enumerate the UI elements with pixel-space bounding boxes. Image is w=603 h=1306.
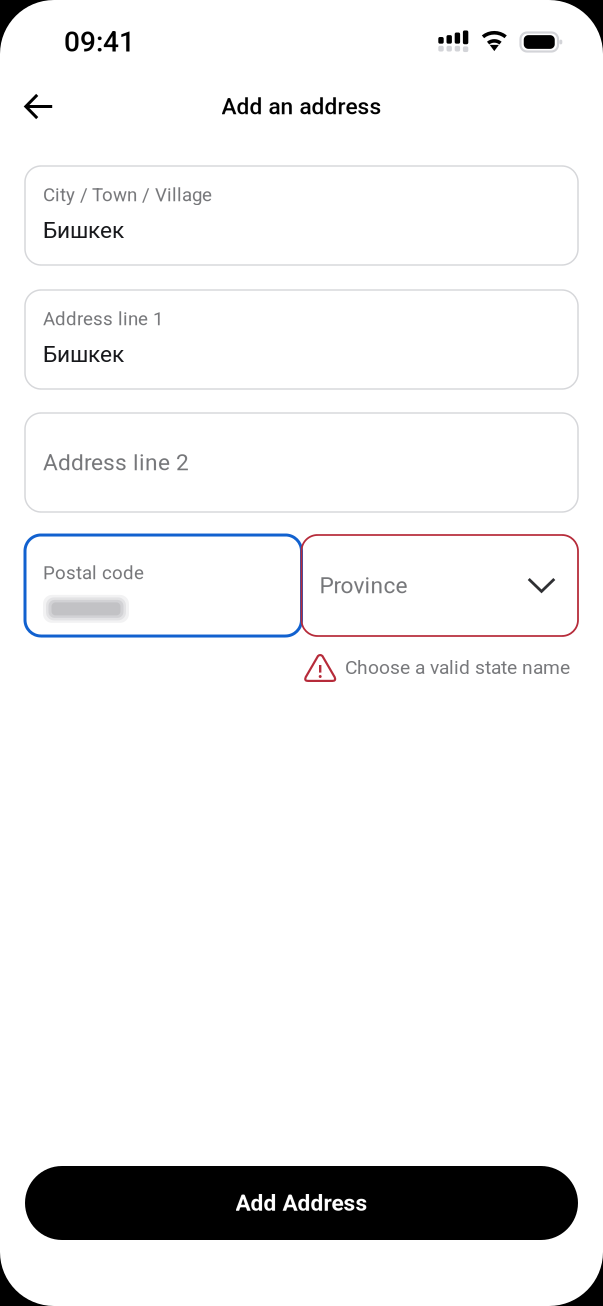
staticText: City / Town / Village bbox=[43, 184, 212, 206]
staticText: Бишкек bbox=[43, 341, 124, 367]
button[interactable]: Add Address bbox=[25, 1166, 578, 1240]
staticText: Province bbox=[319, 572, 407, 599]
staticText: Add Address bbox=[235, 1190, 367, 1216]
staticText: Address line 1 bbox=[43, 308, 163, 330]
staticText: Бишкек bbox=[43, 217, 124, 243]
staticText: Postal code bbox=[43, 562, 144, 584]
button[interactable]: Back bbox=[13, 80, 65, 132]
staticText: Choose a valid state name bbox=[345, 656, 570, 679]
staticText: Add an address bbox=[221, 93, 381, 120]
button[interactable]: Province bbox=[301, 535, 578, 636]
button[interactable]: Postal code bbox=[25, 535, 301, 636]
staticText: Address line 2 bbox=[43, 449, 189, 476]
staticText: 09:41 bbox=[64, 26, 135, 58]
